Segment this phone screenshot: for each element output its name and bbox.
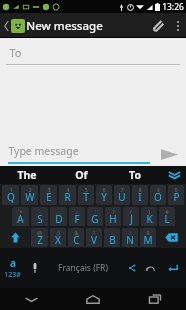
button[interactable]: &	[68, 228, 84, 247]
staticText: H	[109, 212, 117, 226]
staticText: X	[55, 233, 61, 247]
staticText: B	[109, 233, 116, 247]
staticText: I	[138, 190, 142, 204]
button[interactable]: 5	[78, 185, 94, 205]
staticText: R	[64, 190, 71, 204]
staticText: 5	[84, 186, 88, 193]
staticText: W	[25, 190, 35, 204]
button[interactable]: #	[159, 207, 175, 226]
button[interactable]: Navigate up	[2, 19, 27, 33]
button[interactable]: ;	[69, 207, 85, 226]
staticText: 3	[47, 186, 51, 193]
staticText: '	[94, 208, 96, 215]
button[interactable]: Of	[54, 166, 108, 184]
button[interactable]: $	[140, 228, 156, 247]
staticText: a	[10, 256, 16, 270]
button[interactable]: ?	[105, 207, 121, 226]
staticText: N	[126, 233, 134, 247]
button[interactable]: 7	[114, 185, 130, 205]
button[interactable]: -	[31, 207, 48, 226]
staticText: 6	[102, 186, 106, 193]
button[interactable]: 6	[96, 185, 112, 205]
staticText: A	[17, 212, 24, 226]
button[interactable]: Français (FR)	[44, 248, 122, 288]
staticText: O	[154, 190, 162, 204]
staticText: -	[39, 208, 41, 215]
button[interactable]: Expand suggestions	[162, 166, 186, 184]
staticText: T	[83, 190, 89, 204]
button[interactable]: Settings	[122, 248, 141, 288]
button[interactable]: Home	[62, 288, 124, 310]
staticText: 4	[66, 186, 70, 193]
staticText: -	[111, 229, 113, 236]
button[interactable]: Symbols	[0, 248, 25, 288]
button[interactable]: Back	[0, 288, 62, 310]
staticText: S	[37, 212, 43, 226]
button[interactable]: '	[87, 207, 103, 226]
staticText: U	[118, 190, 126, 204]
button[interactable]: @	[31, 228, 48, 247]
button[interactable]: Type message	[8, 144, 150, 164]
staticText: Z	[37, 233, 43, 247]
button[interactable]: (	[123, 207, 139, 226]
staticText: 1	[9, 186, 13, 193]
staticText: )	[148, 208, 150, 215]
staticText: 9	[156, 186, 160, 193]
staticText: L	[164, 212, 170, 226]
button[interactable]: Enter	[160, 248, 186, 288]
staticText: M	[143, 233, 153, 247]
button[interactable]: More options	[170, 13, 186, 38]
staticText: Type message	[8, 144, 79, 158]
button[interactable]: Voice input	[25, 248, 44, 288]
staticText: *	[19, 208, 23, 215]
staticText: @	[37, 229, 42, 236]
staticText: #	[165, 208, 169, 215]
button[interactable]: Backspace	[158, 228, 184, 247]
staticText: The	[17, 168, 37, 182]
button[interactable]: 1	[2, 185, 19, 205]
staticText: K	[146, 212, 153, 226]
staticText: $	[146, 229, 150, 236]
button[interactable]: Undo	[141, 248, 160, 288]
staticText: 13:26	[162, 1, 184, 13]
button[interactable]: )	[141, 207, 157, 226]
staticText: 8	[138, 186, 142, 193]
button[interactable]: To	[0, 38, 186, 65]
button[interactable]: Attach	[144, 13, 170, 38]
button[interactable]: :)	[50, 228, 66, 247]
staticText: F	[74, 212, 80, 226]
button[interactable]: :	[50, 207, 67, 226]
button[interactable]: -	[104, 228, 120, 247]
button[interactable]: The	[0, 166, 54, 184]
button[interactable]: Recent apps	[124, 288, 186, 310]
staticText: V	[91, 233, 97, 247]
button[interactable]: /	[122, 228, 138, 247]
staticText: &	[74, 229, 79, 236]
button[interactable]: Send	[156, 143, 182, 165]
staticText: (	[130, 208, 132, 215]
button[interactable]: 0	[168, 185, 184, 205]
staticText: To	[9, 45, 22, 60]
staticText: !	[93, 229, 95, 236]
button[interactable]: 4	[59, 185, 76, 205]
button[interactable]: Shift	[2, 228, 29, 247]
staticText: G	[91, 212, 99, 226]
staticText: 7	[120, 186, 124, 193]
button[interactable]: 9	[150, 185, 166, 205]
staticText: /	[129, 229, 132, 236]
staticText: J	[130, 212, 133, 226]
button[interactable]: 2	[21, 185, 38, 205]
button[interactable]: 3	[40, 185, 57, 205]
staticText: 123#	[4, 270, 21, 280]
staticText: C	[73, 233, 80, 247]
button[interactable]: !	[86, 228, 102, 247]
button[interactable]: 8	[132, 185, 148, 205]
staticText: P	[173, 190, 180, 204]
staticText: Français (FR)	[58, 262, 108, 274]
button[interactable]: *	[12, 207, 29, 226]
button[interactable]: To	[108, 166, 162, 184]
staticText: :)	[56, 229, 60, 236]
staticText: 2	[28, 186, 32, 193]
staticText: Q	[7, 190, 15, 204]
staticText: D	[55, 212, 63, 226]
